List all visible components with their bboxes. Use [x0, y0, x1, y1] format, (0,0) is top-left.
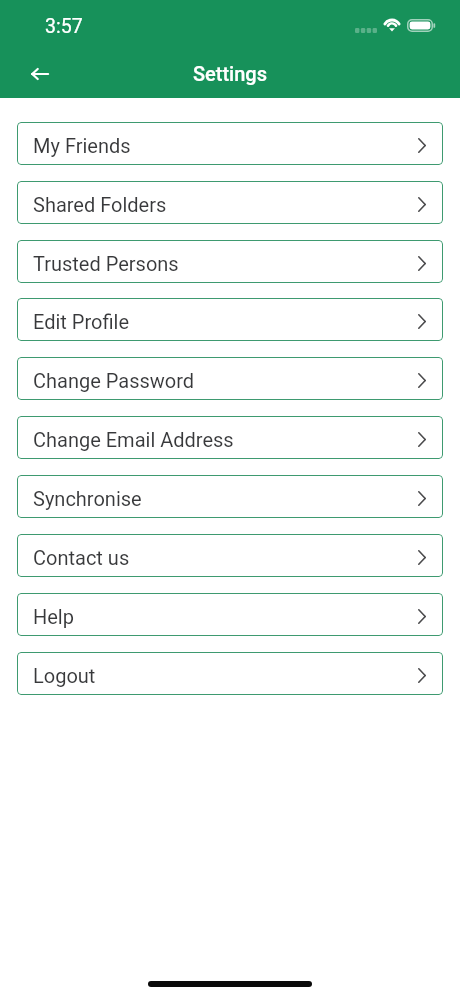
button[interactable]: Back — [20, 54, 60, 94]
button[interactable]: My Friends — [17, 122, 443, 165]
button[interactable]: Synchronise — [17, 475, 443, 518]
staticText: Change Email Address — [33, 428, 234, 451]
button[interactable]: Trusted Persons — [17, 240, 443, 283]
staticText: Edit Profile — [33, 310, 129, 333]
staticText: Shared Folders — [33, 193, 167, 216]
button[interactable]: Change Email Address — [17, 416, 443, 459]
staticText: Trusted Persons — [33, 252, 179, 275]
staticText: Settings — [0, 62, 460, 85]
staticText: Change Password — [33, 369, 195, 392]
button[interactable]: Logout — [17, 652, 443, 695]
button[interactable]: Change Password — [17, 357, 443, 400]
staticText: 3:57 — [45, 15, 83, 38]
staticText: My Friends — [33, 134, 131, 157]
button[interactable]: Contact us — [17, 534, 443, 577]
button[interactable]: Help — [17, 593, 443, 636]
button[interactable]: Shared Folders — [17, 181, 443, 224]
button[interactable]: Edit Profile — [17, 298, 443, 341]
staticText: Logout — [33, 664, 96, 687]
staticText: Help — [33, 605, 74, 628]
staticText: Contact us — [33, 546, 130, 569]
staticText: Synchronise — [33, 487, 142, 510]
